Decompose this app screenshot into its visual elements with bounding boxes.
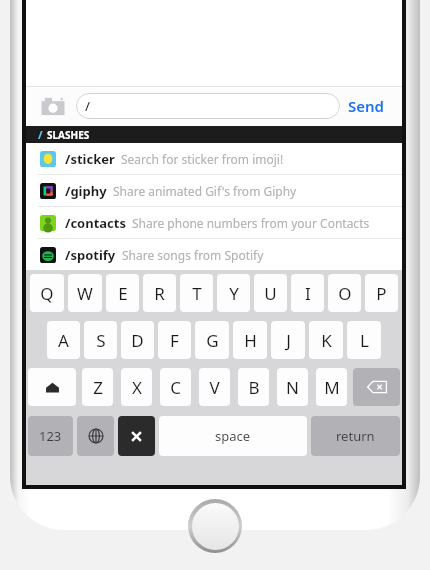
button[interactable]: L bbox=[347, 321, 381, 359]
staticText: I bbox=[305, 282, 311, 305]
staticText: SLASHES bbox=[47, 128, 90, 142]
staticText: 123 bbox=[39, 427, 62, 445]
staticText: Share songs from Spotify bbox=[122, 247, 264, 263]
staticText: H bbox=[244, 329, 257, 352]
button[interactable]: B bbox=[238, 368, 269, 406]
button[interactable]: W bbox=[68, 274, 102, 312]
button[interactable]: Z bbox=[82, 368, 113, 406]
staticText: O bbox=[338, 282, 352, 305]
button[interactable]: Change keyboard bbox=[77, 416, 114, 456]
button[interactable]: R bbox=[143, 274, 176, 312]
button[interactable]: A bbox=[47, 321, 80, 359]
button[interactable]: J bbox=[271, 321, 305, 359]
staticText: L bbox=[360, 329, 369, 352]
button[interactable]: Numbers bbox=[28, 416, 73, 456]
staticText: P bbox=[376, 282, 387, 305]
staticText: /giphy bbox=[65, 182, 107, 200]
staticText: /contacts bbox=[65, 214, 126, 232]
button[interactable]: /sticker bbox=[26, 143, 402, 174]
button[interactable]: / bbox=[76, 93, 340, 119]
staticText: F bbox=[170, 329, 179, 352]
staticText: G bbox=[206, 329, 219, 352]
button[interactable]: I bbox=[291, 274, 324, 312]
staticText: V bbox=[209, 376, 220, 399]
staticText: E bbox=[118, 282, 128, 305]
button[interactable]: C bbox=[160, 368, 191, 406]
staticText: B bbox=[248, 376, 260, 399]
staticText: Y bbox=[229, 282, 239, 305]
staticText: space bbox=[215, 427, 251, 445]
staticText: return bbox=[336, 427, 375, 445]
staticText: T bbox=[192, 282, 202, 305]
staticText: R bbox=[154, 282, 165, 305]
button[interactable]: space bbox=[159, 416, 307, 456]
staticText: Share phone numbers from your Contacts bbox=[132, 215, 370, 231]
staticText: C bbox=[170, 376, 181, 399]
button[interactable]: F bbox=[158, 321, 191, 359]
staticText: /sticker bbox=[65, 150, 115, 168]
button[interactable]: Shift bbox=[28, 368, 76, 406]
button[interactable]: Home bbox=[188, 499, 242, 553]
staticText: / bbox=[85, 97, 91, 115]
staticText: M bbox=[324, 376, 340, 399]
button[interactable]: O bbox=[328, 274, 361, 312]
button[interactable]: G bbox=[195, 321, 229, 359]
staticText: /spotify bbox=[65, 246, 116, 264]
staticText: W bbox=[77, 282, 93, 305]
button[interactable]: D bbox=[121, 321, 154, 359]
button[interactable]: H bbox=[233, 321, 267, 359]
button[interactable]: /contacts bbox=[26, 207, 402, 238]
button[interactable]: X bbox=[121, 368, 152, 406]
button[interactable]: Camera bbox=[36, 89, 70, 123]
staticText: Z bbox=[93, 376, 103, 399]
staticText: / bbox=[38, 127, 43, 142]
staticText: Share animated Gif's from Giphy bbox=[113, 183, 297, 199]
staticText: N bbox=[286, 376, 299, 399]
button[interactable]: S bbox=[84, 321, 117, 359]
button[interactable]: T bbox=[180, 274, 213, 312]
staticText: Q bbox=[40, 282, 54, 305]
staticText: X bbox=[132, 376, 142, 399]
button[interactable]: U bbox=[254, 274, 287, 312]
button[interactable]: P bbox=[365, 274, 398, 312]
button[interactable]: M bbox=[316, 368, 347, 406]
button[interactable]: /spotify bbox=[26, 239, 402, 270]
staticText: J bbox=[286, 329, 291, 352]
staticText: Send bbox=[348, 96, 384, 116]
button[interactable]: Send bbox=[340, 89, 392, 123]
button[interactable]: K bbox=[309, 321, 343, 359]
button[interactable]: Y bbox=[217, 274, 250, 312]
button[interactable]: /giphy bbox=[26, 175, 402, 206]
button[interactable]: return bbox=[311, 416, 400, 456]
button[interactable]: N bbox=[277, 368, 308, 406]
button[interactable]: V bbox=[199, 368, 230, 406]
staticText: S bbox=[96, 329, 106, 352]
staticText: D bbox=[131, 329, 144, 352]
staticText: A bbox=[58, 329, 69, 352]
staticText: Search for sticker from imoji! bbox=[121, 151, 284, 167]
button[interactable]: E bbox=[106, 274, 139, 312]
button[interactable]: Backspace bbox=[353, 368, 400, 406]
button[interactable]: Close bbox=[118, 416, 155, 456]
staticText: U bbox=[264, 282, 277, 305]
staticText: K bbox=[321, 329, 332, 352]
button[interactable]: Q bbox=[30, 274, 64, 312]
